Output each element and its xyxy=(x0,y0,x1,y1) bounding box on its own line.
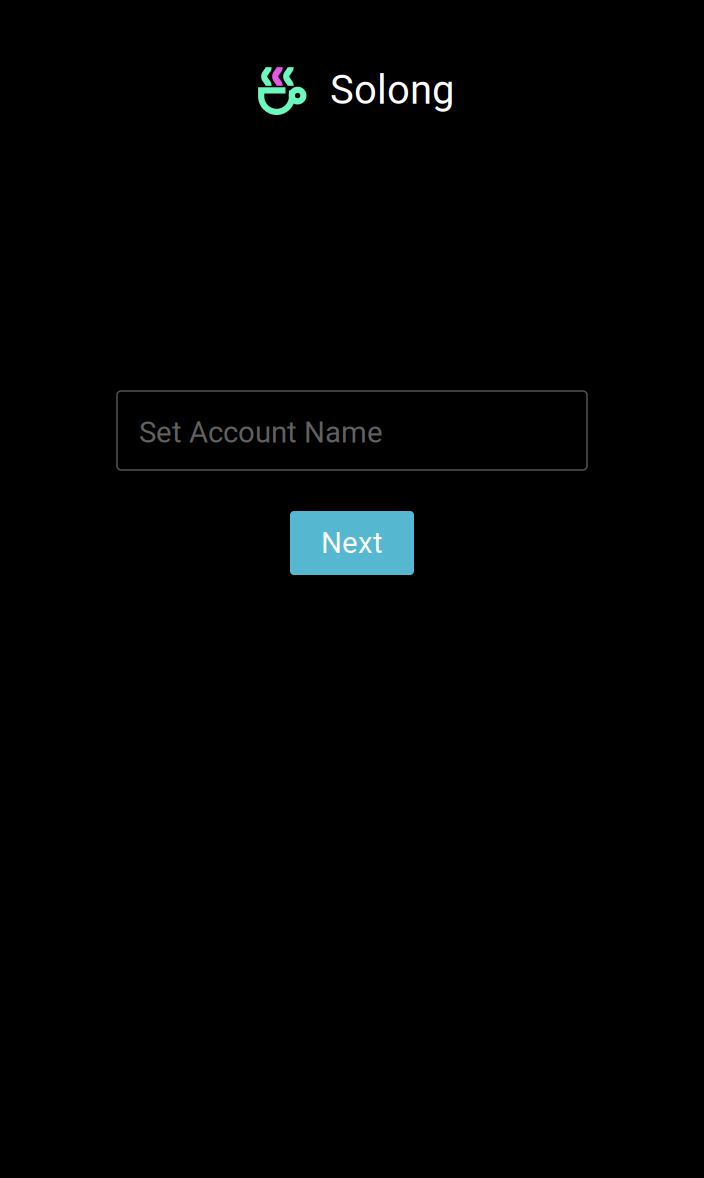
button[interactable]: Set Account Name xyxy=(117,391,587,470)
staticText: Set Account Name xyxy=(139,415,383,450)
staticText: Solong xyxy=(330,67,454,113)
staticText: Next xyxy=(321,526,383,560)
button[interactable]: Next xyxy=(290,511,414,575)
